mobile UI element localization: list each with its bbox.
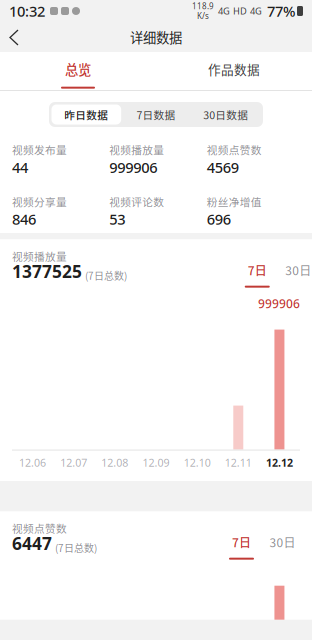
staticText: 视频评论数 [109,194,164,209]
staticText: 4G [218,5,230,17]
button[interactable]: 7日 [237,261,278,288]
button[interactable]: 总览 [0,51,156,91]
button[interactable]: Back [0,22,32,52]
staticText: 作品数据 [208,60,260,78]
staticText: 30日 [269,533,295,551]
staticText: 30日数据 [203,107,248,122]
staticText: 12.10 [184,456,211,470]
staticText: 7日 [248,261,267,279]
button[interactable]: 昨日数据 [51,104,121,124]
staticText: 视频发布量 [12,142,67,157]
staticText: 12.07 [60,456,87,470]
staticText: 视频播放量 [109,142,164,157]
staticText: 4G [250,5,262,17]
staticText: 视频点赞数 [207,142,262,157]
staticText: 77% [267,1,295,21]
staticText: 53 [109,209,125,229]
button[interactable]: 7日 [221,533,262,560]
staticText: 44 [12,157,28,177]
staticText: 696 [207,209,231,229]
staticText: 6447 [12,532,52,555]
staticText: 总览 [65,59,91,79]
staticText: 视频点赞数 [12,520,67,536]
staticText: 7日 [232,533,251,551]
staticText: 详细数据 [130,27,182,47]
staticText: 4569 [207,157,239,177]
staticText: 昨日数据 [64,107,108,122]
staticText: 视频分享量 [12,194,67,209]
staticText: 1377525 [12,260,82,283]
button[interactable]: 30日数据 [191,104,260,124]
staticText: 30日 [285,261,311,279]
staticText: 10:32 [9,1,45,21]
staticText: (7日总数) [55,540,97,555]
button[interactable]: 30日 [278,261,312,288]
staticText: 12.09 [142,456,169,470]
staticText: 12.11 [225,456,252,470]
staticText: 999906 [109,157,157,177]
button[interactable]: 30日 [262,533,303,560]
staticText: K/s [197,10,209,21]
staticText: 118.9 [192,1,214,11]
staticText: 12.06 [19,456,46,470]
button[interactable]: 作品数据 [156,52,312,90]
staticText: 12.12 [266,456,293,470]
staticText: (7日总数) [85,268,127,283]
staticText: 846 [12,209,36,229]
staticText: 12.08 [101,456,128,470]
staticText: 7日数据 [136,107,175,122]
staticText: 粉丝净增值 [207,194,262,209]
staticText: HD [233,5,247,17]
button[interactable]: 7日数据 [121,104,191,124]
staticText: 视频播放量 [12,248,67,264]
staticText: 999906 [258,296,300,311]
